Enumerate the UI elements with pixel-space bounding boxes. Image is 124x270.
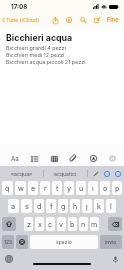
button[interactable]: spazio [30,235,98,249]
staticText: 17:08 [11,3,28,11]
staticText: n [81,220,86,229]
button[interactable]: z [24,217,33,231]
button[interactable]: «acqua» [0,166,43,181]
staticText: «acqua» [11,171,33,177]
button[interactable]: invio [100,235,122,249]
button[interactable]: m [90,217,99,231]
button[interactable]: x [35,217,44,231]
staticText: b [70,220,75,229]
staticText: y [67,184,72,193]
button[interactable]: Scrittura a mano [101,166,112,181]
button[interactable]: Numeri [2,235,14,249]
staticText: z [27,220,31,229]
staticText: Bicchieri acqua piccoli 21 pezzi [6,59,86,66]
button[interactable]: Maiuscole [2,217,16,231]
staticText: x [38,220,42,229]
button[interactable]: Cerca [76,13,90,27]
staticText: w [18,184,24,193]
button[interactable]: i [88,181,98,195]
button[interactable]: g [58,199,68,213]
button[interactable]: Tabella [48,151,60,166]
staticText: v [59,220,64,229]
button[interactable]: Condividi [48,13,62,27]
staticText: r [44,184,47,193]
button[interactable]: Pennarello [90,166,101,181]
staticText: f [50,202,53,211]
button[interactable]: Nuova nota [90,13,104,27]
button[interactable]: o [100,181,110,195]
button[interactable]: Allegato [67,151,79,166]
button[interactable]: Chiudi tastiera [106,151,118,166]
staticText: i [92,184,94,193]
staticText: h [73,202,78,211]
button[interactable]: Formato [9,151,21,166]
staticText: Fine [107,17,119,24]
button[interactable]: f [46,199,56,213]
button[interactable]: q [2,181,13,195]
staticText: t [56,184,59,193]
staticText: invio [105,239,117,245]
staticText: l [110,202,112,211]
staticText: o [103,184,108,193]
staticText: k [97,202,101,211]
staticText: 123 [4,239,12,245]
button[interactable]: p [112,181,122,195]
staticText: g [61,202,66,211]
staticText: u [79,184,84,193]
staticText: j [86,202,88,211]
staticText: p [115,184,120,193]
staticText: Bicchieri acqua [6,32,73,43]
button[interactable]: Fine [104,15,124,26]
staticText: acquatici [54,171,77,177]
staticText: m [91,220,98,229]
button[interactable]: v [57,217,66,231]
button[interactable]: y [64,181,74,195]
button[interactable]: Emoji [16,235,28,249]
button[interactable]: u [76,181,86,195]
button[interactable]: w [15,181,26,195]
button[interactable]: r [40,181,50,195]
button[interactable]: b [68,217,77,231]
staticText: Bicchieri medi 12 pezzi [6,52,65,59]
staticText: s [25,202,29,211]
button[interactable]: Cancella [108,217,122,231]
button[interactable]: h [70,199,80,213]
staticText: Tutte (iCloud) [6,17,40,23]
button[interactable]: l [106,199,116,213]
button[interactable]: s [21,199,32,213]
button[interactable]: Dettatura [110,254,120,264]
button[interactable]: acquatici [44,166,87,181]
staticText: d [37,202,42,211]
button[interactable]: t [52,181,62,195]
button[interactable]: d [34,199,44,213]
button[interactable]: c [46,217,55,231]
button[interactable]: e [28,181,38,195]
button[interactable]: n [79,217,88,231]
staticText: spazio [56,239,72,245]
button[interactable]: Fotocamera [87,151,99,166]
staticText: Bicchieri grandi 4 pezzi [6,45,66,52]
button[interactable]: Impostazioni [112,166,123,181]
staticText: a [11,202,16,211]
button[interactable]: a [8,199,19,213]
button[interactable]: Marcatura [62,13,76,27]
staticText: c [48,220,53,229]
button[interactable]: k [94,199,104,213]
staticText: Aa [11,155,19,163]
button[interactable]: j [82,199,92,213]
staticText: e [31,184,36,193]
staticText: q [5,184,10,193]
button[interactable]: Tutte (iCloud) [0,15,42,25]
button[interactable]: Elenco puntato [28,151,40,166]
button[interactable]: Cambia tastiera [4,254,14,264]
